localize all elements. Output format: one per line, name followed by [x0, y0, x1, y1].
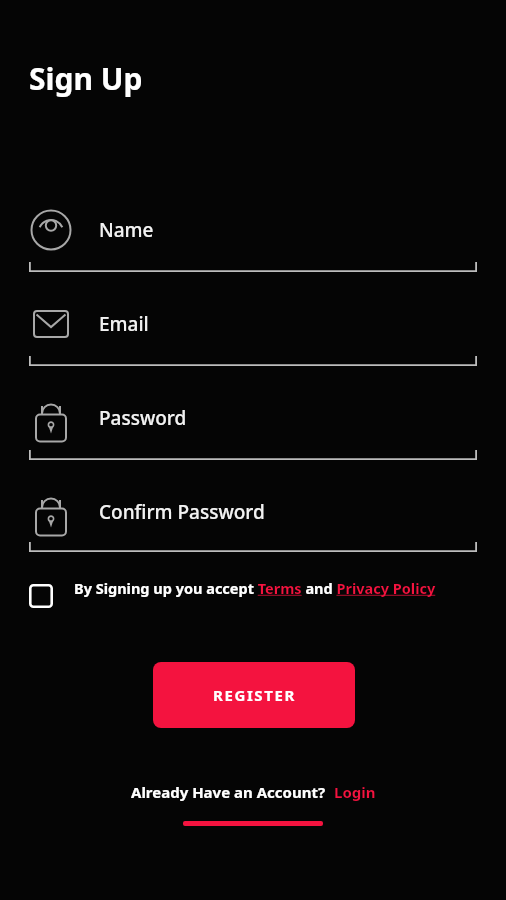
staticText: By Signing up you accept Terms and Priva… [74, 578, 436, 598]
button[interactable]: Accept terms checkbox [29, 584, 53, 608]
staticText: Sign Up [29, 58, 143, 99]
staticText: REGISTER [213, 685, 296, 705]
button[interactable]: Password [29, 392, 477, 444]
staticText: Email [99, 311, 149, 337]
staticText: Name [99, 217, 154, 243]
button[interactable]: Name [29, 204, 477, 256]
staticText: Confirm Password [99, 499, 265, 525]
button[interactable]: Accept terms checkbox [29, 578, 477, 602]
staticText: Password [99, 405, 187, 431]
button[interactable]: Confirm Password [29, 486, 477, 538]
button[interactable]: Already Have an Account? [131, 782, 376, 802]
staticText: Already Have an Account? [131, 782, 326, 802]
button[interactable]: Email [29, 298, 477, 350]
staticText: Login [334, 782, 376, 802]
button[interactable]: REGISTER [153, 662, 355, 728]
